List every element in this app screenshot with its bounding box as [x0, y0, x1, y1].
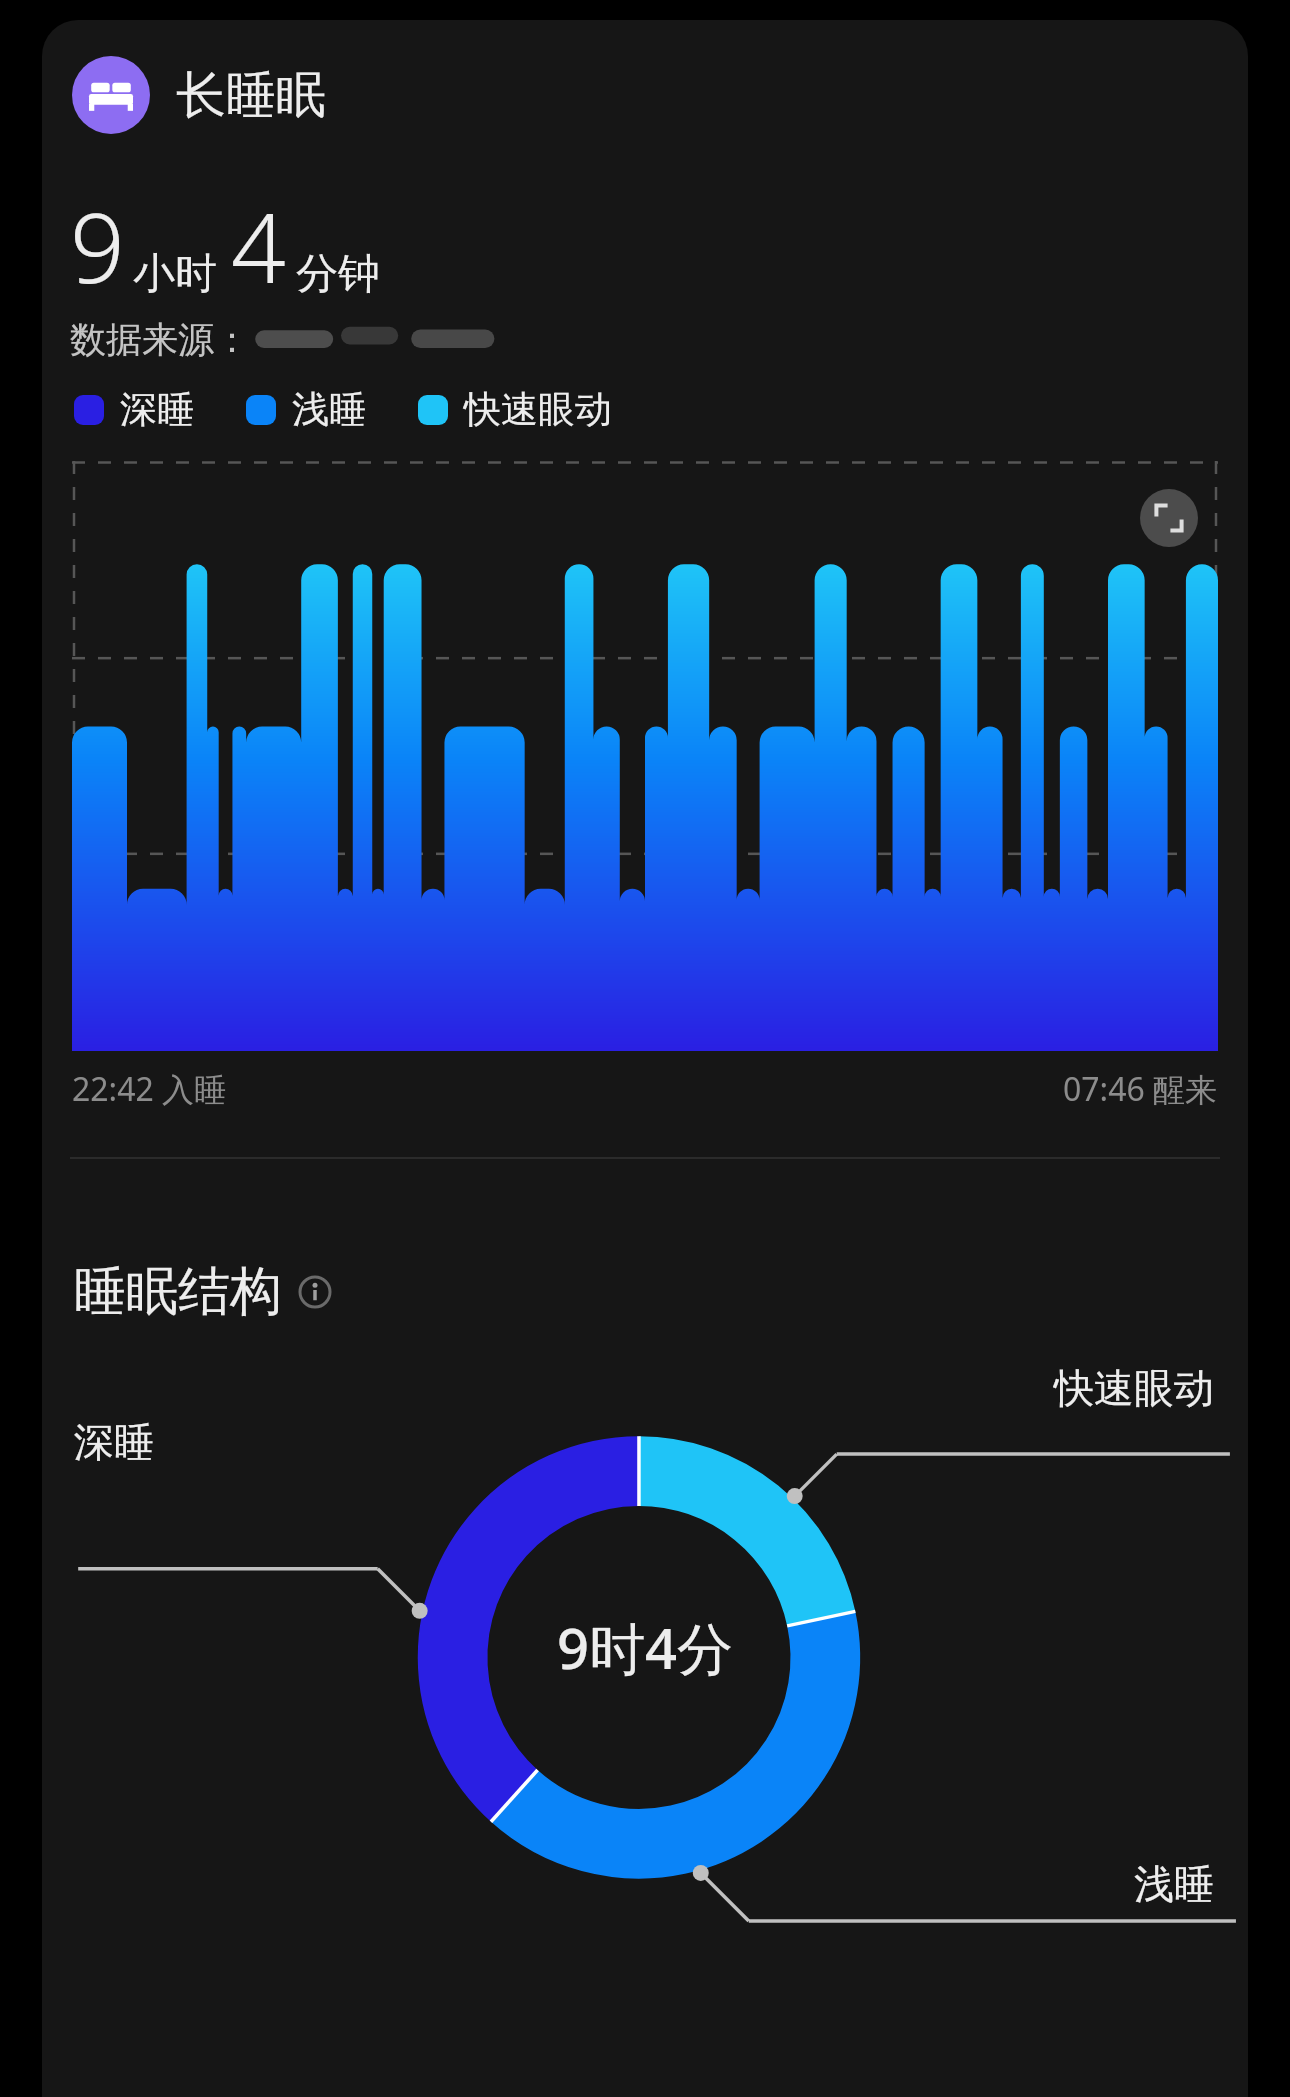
staticText: 深睡	[74, 1417, 154, 1467]
button[interactable]: Info	[298, 1275, 332, 1309]
button[interactable]: 睡眠结构	[74, 1259, 332, 1325]
staticText: 浅睡	[292, 386, 366, 433]
staticText: 快速眼动	[1054, 1363, 1214, 1413]
staticText: 睡眠结构	[74, 1259, 282, 1325]
staticText: 9时4分	[557, 1609, 734, 1685]
button[interactable]: 快速眼动	[418, 386, 612, 433]
staticText: 9	[70, 180, 125, 311]
button[interactable]: Expand chart	[1140, 489, 1198, 547]
button[interactable]: 浅睡	[246, 386, 366, 433]
staticText: 深睡	[120, 386, 194, 433]
staticText: 浅睡	[1134, 1859, 1214, 1909]
staticText: 分钟	[296, 248, 380, 301]
staticText: 4	[231, 180, 286, 311]
button[interactable]: 长睡眠	[72, 56, 326, 134]
staticText: 快速眼动	[464, 386, 612, 433]
staticText: 小时	[133, 248, 217, 301]
staticText: 数据来源：	[70, 317, 250, 362]
staticText: 长睡眠	[176, 64, 326, 127]
staticText: 22:42 入睡	[72, 1067, 227, 1111]
button[interactable]: 深睡	[74, 386, 194, 433]
staticText: 07:46 醒来	[1063, 1067, 1218, 1111]
